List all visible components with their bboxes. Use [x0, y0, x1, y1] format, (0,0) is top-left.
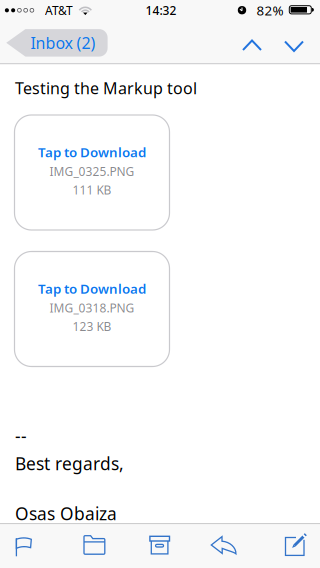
staticText: 123 KB [72, 318, 111, 334]
staticText: AT&T [45, 2, 73, 18]
staticText: IMG_0325.PNG [49, 163, 134, 179]
button[interactable]: Move to folder [72, 523, 116, 567]
staticText: -- [15, 424, 27, 447]
staticText: Inbox (2) [30, 32, 95, 53]
button[interactable]: Previous message [230, 23, 274, 67]
staticText: Osas Obaiza [15, 502, 117, 525]
button[interactable]: Reply [201, 523, 245, 567]
button[interactable]: Back [2, 21, 112, 65]
staticText: Tap to Download [38, 143, 146, 161]
staticText: Tap to Download [38, 280, 146, 297]
staticText: IMG_0318.PNG [49, 300, 134, 316]
button[interactable]: Flag [2, 525, 46, 568]
staticText: 82% [256, 1, 283, 19]
button[interactable]: Compose [273, 524, 317, 568]
staticText: 14:32 [145, 2, 176, 18]
staticText: 111 KB [72, 182, 111, 198]
staticText: Testing the Markup tool [15, 77, 197, 99]
button[interactable]: Tap to Download [14, 115, 169, 230]
button[interactable]: Tap to Download [14, 251, 169, 366]
button[interactable]: Next message [272, 24, 316, 68]
button[interactable]: Archive [138, 523, 182, 567]
staticText: Best regards, [15, 452, 124, 475]
